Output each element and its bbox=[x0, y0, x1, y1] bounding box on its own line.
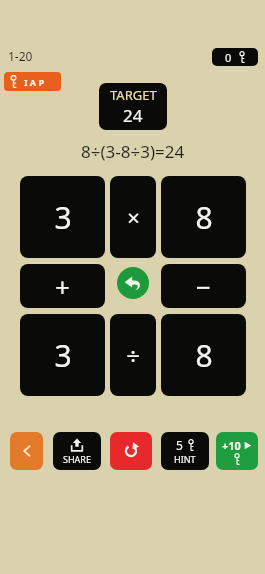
staticText: SHARE bbox=[63, 453, 91, 465]
staticText: 8 bbox=[195, 335, 213, 376]
staticText: 5 bbox=[176, 437, 183, 453]
button[interactable]: 8 bbox=[161, 176, 246, 258]
button[interactable]: TARGET bbox=[99, 83, 167, 130]
staticText: 8÷(3-8÷3)=24 bbox=[81, 140, 185, 163]
staticText: × bbox=[127, 202, 140, 232]
staticText: +10 bbox=[222, 438, 241, 453]
staticText: 3 bbox=[54, 197, 72, 238]
button[interactable]: 8 bbox=[161, 314, 246, 396]
staticText: 8 bbox=[195, 197, 213, 238]
staticText: HINT bbox=[174, 453, 196, 465]
staticText: + bbox=[55, 269, 70, 304]
button[interactable]: × bbox=[110, 176, 156, 258]
button[interactable]: + bbox=[20, 264, 105, 308]
button[interactable]: I A P bbox=[4, 72, 61, 91]
staticText: I A P bbox=[24, 76, 44, 88]
staticText: 24 bbox=[123, 104, 143, 127]
button[interactable]: Keys bbox=[212, 48, 258, 66]
button[interactable]: Back bbox=[10, 432, 43, 470]
staticText: TARGET bbox=[110, 86, 157, 104]
button[interactable]: 3 bbox=[20, 314, 105, 396]
staticText: 1-20 bbox=[8, 48, 33, 64]
button[interactable]: 5 bbox=[161, 432, 209, 470]
staticText: 3 bbox=[54, 335, 72, 376]
button[interactable]: 3 bbox=[20, 176, 105, 258]
button[interactable]: Watch ad for 10 keys bbox=[216, 432, 258, 470]
button[interactable]: Undo bbox=[117, 267, 149, 299]
staticText: − bbox=[196, 269, 211, 304]
button[interactable]: Restart bbox=[110, 432, 152, 470]
staticText: ÷ bbox=[126, 339, 140, 372]
staticText: 0 bbox=[225, 50, 232, 65]
button[interactable]: − bbox=[161, 264, 246, 308]
button[interactable]: SHARE bbox=[53, 432, 101, 470]
button[interactable]: ÷ bbox=[110, 314, 156, 396]
